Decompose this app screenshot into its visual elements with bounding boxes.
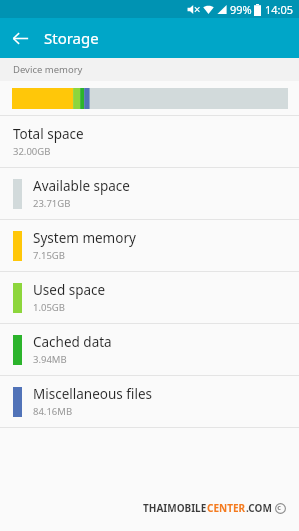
staticText: Storage bbox=[44, 28, 99, 48]
staticText: Available space bbox=[33, 177, 130, 195]
staticText: 1.05GB bbox=[33, 301, 65, 314]
staticText: 99% bbox=[230, 2, 252, 17]
staticText: System memory bbox=[33, 229, 136, 247]
staticText: Miscellaneous files bbox=[33, 385, 152, 403]
button[interactable]: Available space bbox=[0, 168, 299, 219]
staticText: CENTER bbox=[207, 501, 246, 515]
staticText: 7.15GB bbox=[33, 249, 65, 262]
staticText: c bbox=[277, 503, 281, 513]
staticText: Used space bbox=[33, 281, 106, 299]
button[interactable]: Cached data bbox=[0, 324, 299, 375]
staticText: .COM bbox=[246, 501, 272, 515]
staticText: Device memory bbox=[13, 63, 83, 76]
button[interactable]: Back bbox=[0, 18, 40, 58]
staticText: THAIMOBILE bbox=[143, 501, 207, 515]
button[interactable]: Used space bbox=[0, 272, 299, 323]
button[interactable]: System memory bbox=[0, 220, 299, 271]
staticText: 3.94MB bbox=[33, 353, 67, 366]
button[interactable]: Total space bbox=[0, 116, 299, 167]
staticText: 32.00GB bbox=[13, 145, 51, 158]
staticText: Cached data bbox=[33, 333, 112, 351]
staticText: 84.16MB bbox=[33, 405, 73, 418]
staticText: Total space bbox=[13, 125, 84, 143]
button[interactable]: Miscellaneous files bbox=[0, 376, 299, 427]
staticText: 23.71GB bbox=[33, 197, 71, 210]
staticText: 14:05 bbox=[265, 2, 294, 17]
